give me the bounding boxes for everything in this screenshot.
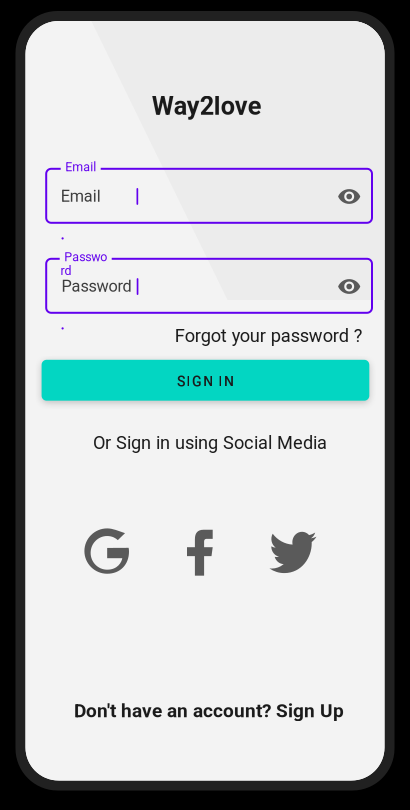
staticText: Forgot your password ? bbox=[175, 325, 363, 346]
staticText: Or Sign in using Social Media bbox=[93, 432, 327, 453]
staticText: Way2love bbox=[152, 91, 262, 121]
button[interactable]: Don't have an account? Sign Up bbox=[25, 21, 384, 47]
staticText: N bbox=[224, 373, 234, 390]
staticText: rd bbox=[61, 263, 72, 278]
staticText: S bbox=[177, 373, 185, 390]
staticText: I bbox=[186, 373, 190, 390]
button[interactable]: S bbox=[25, 21, 353, 62]
staticText: Email bbox=[65, 160, 96, 174]
button[interactable]: Sign in with Twitter bbox=[25, 21, 73, 62]
button[interactable]: Sign in with Google bbox=[25, 21, 70, 66]
staticText: I bbox=[218, 373, 222, 390]
staticText: N bbox=[203, 373, 213, 390]
staticText: Password bbox=[61, 277, 131, 296]
button[interactable]: Sign in with Facebook bbox=[25, 21, 51, 67]
staticText: G bbox=[192, 373, 202, 390]
staticText: Don't have an account? Sign Up bbox=[74, 700, 344, 722]
staticText: Email bbox=[61, 187, 101, 206]
staticText: Passwo bbox=[64, 250, 107, 264]
button[interactable]: Forgot your password ? bbox=[25, 21, 215, 47]
